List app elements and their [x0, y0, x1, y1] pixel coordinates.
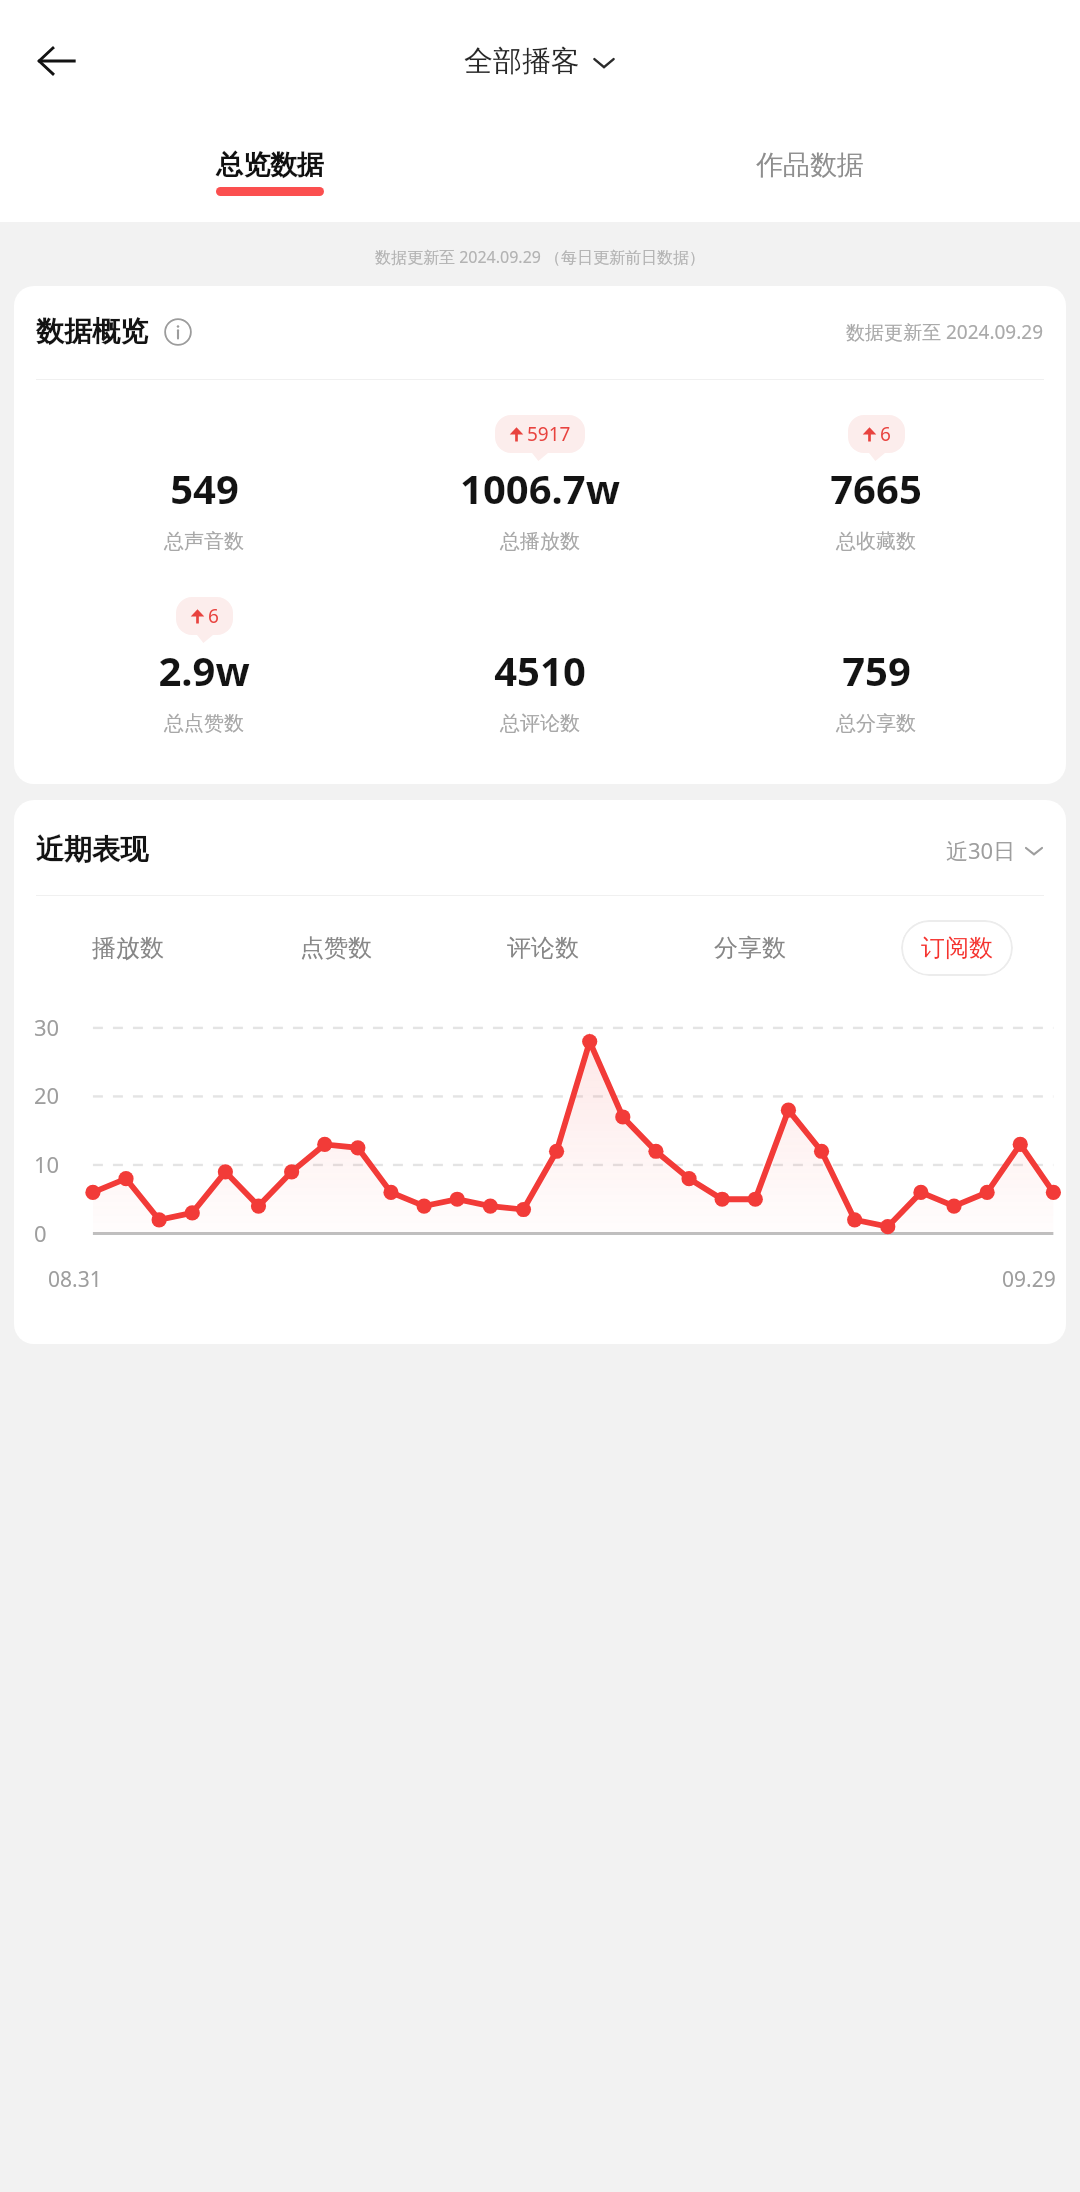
staticText: 2.9w: [158, 643, 250, 697]
staticText: 1006.7w: [460, 461, 620, 515]
button[interactable]: 6: [36, 597, 372, 736]
staticText: 总评论数: [500, 711, 580, 736]
staticText: 6: [880, 421, 891, 447]
button[interactable]: 评论数: [439, 933, 646, 963]
staticText: 08.31: [48, 1265, 102, 1294]
button[interactable]: 近30日: [946, 835, 1044, 865]
staticText: 作品数据: [756, 148, 864, 182]
button[interactable]: Back: [26, 31, 86, 91]
staticText: 09.29: [1002, 1265, 1056, 1294]
staticText: 数据更新至 2024.09.29 （每日更新前日数据）: [375, 246, 706, 268]
staticText: 759: [842, 643, 911, 697]
staticText: 近期表现: [36, 832, 148, 867]
staticText: 点赞数: [300, 933, 372, 963]
staticText: 7665: [830, 461, 922, 515]
staticText: 总览数据: [216, 148, 324, 182]
staticText: 总播放数: [500, 529, 580, 554]
staticText: 评论数: [507, 933, 579, 963]
button[interactable]: 分享数: [646, 933, 853, 963]
staticText: 总分享数: [836, 711, 916, 736]
staticText: 5917: [527, 421, 571, 447]
staticText: 总点赞数: [164, 711, 244, 736]
staticText: 总声音数: [164, 529, 244, 554]
button[interactable]: 5917: [372, 415, 708, 554]
staticText: 近30日: [946, 835, 1016, 865]
staticText: 6: [208, 603, 219, 629]
staticText: 数据概览: [36, 314, 148, 349]
staticText: 4510: [494, 643, 586, 697]
staticText: 总收藏数: [836, 529, 916, 554]
staticText: 0: [34, 1218, 47, 1248]
staticText: 分享数: [714, 933, 786, 963]
button[interactable]: 点赞数: [232, 933, 439, 963]
staticText: 播放数: [92, 933, 164, 963]
button[interactable]: 549: [36, 414, 372, 554]
staticText: 20: [34, 1080, 60, 1110]
staticText: 30: [34, 1012, 60, 1042]
button[interactable]: 6: [708, 415, 1044, 554]
button[interactable]: 作品数据: [540, 122, 1080, 222]
staticText: 订阅数: [921, 933, 993, 963]
staticText: 数据更新至 2024.09.29: [846, 319, 1044, 345]
button[interactable]: 4510: [372, 596, 708, 736]
button[interactable]: 759: [708, 596, 1044, 736]
button[interactable]: 全部播客: [464, 43, 616, 80]
staticText: 549: [170, 461, 239, 515]
staticText: 10: [34, 1149, 60, 1179]
button[interactable]: 订阅数: [853, 920, 1060, 976]
button[interactable]: 总览数据: [0, 122, 540, 222]
staticText: 全部播客: [464, 43, 580, 80]
button[interactable]: 播放数: [24, 933, 232, 963]
button[interactable]: Info: [162, 316, 194, 348]
